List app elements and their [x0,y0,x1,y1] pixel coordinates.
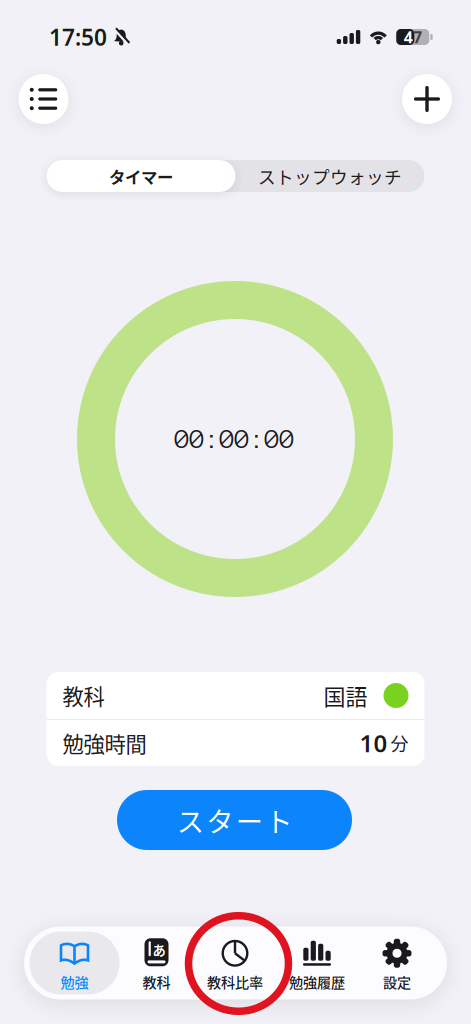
staticText: 教科 [142,971,170,992]
button[interactable]: 勉強履歴 [272,927,362,999]
button[interactable]: スタート [117,790,352,850]
button[interactable]: 教科 [46,672,424,719]
staticText: ストップウォッチ [258,163,402,189]
staticText: スタート [177,800,292,840]
button[interactable]: List [18,74,68,124]
staticText: 国語 [323,680,367,711]
staticText: 17:50 [49,22,107,52]
staticText: 勉強時間 [62,728,146,758]
staticText: 教科比率 [207,971,263,992]
button[interactable]: ストップウォッチ [235,160,424,192]
staticText: 教科 [62,680,104,711]
button[interactable]: タイマー [46,160,235,192]
button[interactable]: 勉強時間 [46,720,424,766]
staticText: 勉強履歴 [289,971,345,992]
button[interactable]: Add [402,74,452,124]
button[interactable]: 勉強 [29,927,119,999]
staticText: タイマー [109,164,173,188]
staticText: 10 [359,727,387,759]
staticText: 4 [404,26,413,48]
staticText: あ [152,940,165,959]
button[interactable]: 設定 [352,927,442,999]
staticText: 7 [413,26,422,48]
button[interactable]: あ [111,927,201,999]
staticText: 分 [390,730,408,756]
staticText: 設定 [383,971,411,992]
staticText: 00:00:00 [175,425,295,453]
button[interactable]: 教科比率 [190,927,280,999]
staticText: 勉強 [60,971,88,992]
